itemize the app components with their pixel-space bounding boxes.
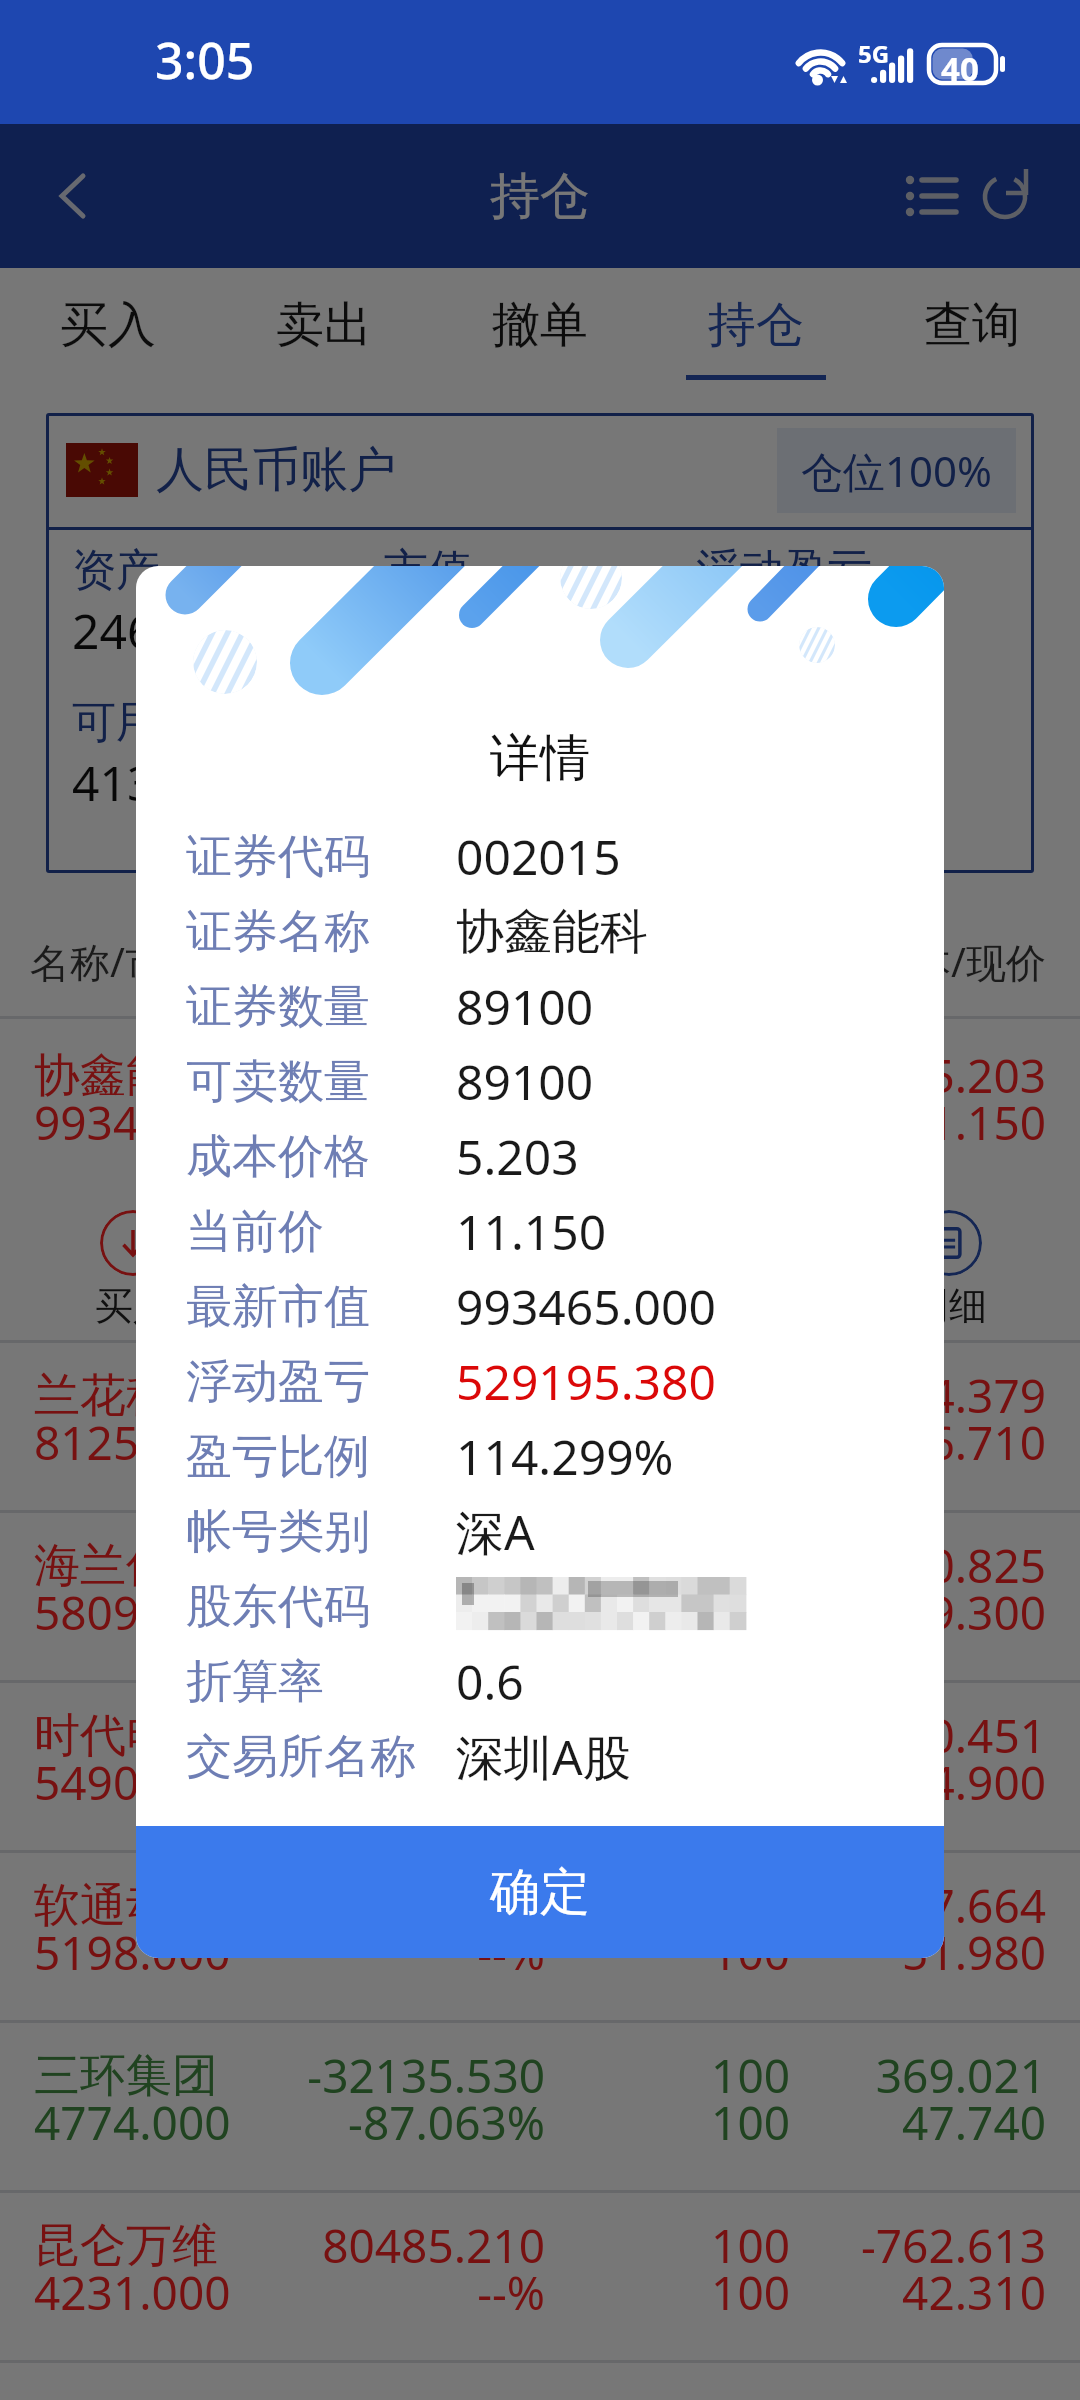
button[interactable]: 明细 (889, 1210, 1009, 1330)
staticText: 812582.000 (34, 1411, 294, 1474)
staticText: 40 (941, 46, 979, 91)
button[interactable]: Back (28, 151, 118, 241)
staticText: 持仓 (708, 295, 804, 355)
staticText (294, 1874, 545, 1937)
button[interactable]: 时代电 (0, 1683, 1080, 1850)
staticText: 盈亏 (291, 936, 543, 986)
staticText: 确定 (490, 1861, 590, 1924)
staticText: 4231.000 (34, 2261, 294, 2324)
staticText: 100 (545, 2261, 790, 2324)
staticText: 89100 (545, 1091, 790, 1154)
staticText: 59000 (545, 1364, 790, 1427)
staticText: 4.379 (790, 1364, 1046, 1427)
staticText: 资产 (72, 543, 160, 598)
button[interactable]: 买入 (73, 1210, 193, 1330)
staticText: 002015 (456, 824, 621, 889)
staticText: 62465 (545, 1581, 790, 1644)
staticText: 卖出 (367, 1282, 443, 1330)
staticText: 5G (858, 37, 890, 70)
staticText: 6.710 (790, 1411, 1046, 1474)
button[interactable]: 卖出 (216, 268, 432, 398)
staticText: --% (294, 2261, 545, 2324)
staticText: 89100 (456, 974, 594, 1039)
staticText: 369.021 (790, 2044, 1046, 2107)
button[interactable]: 三环集团 (0, 2023, 1080, 2190)
button[interactable]: 海兰信 (0, 1513, 1080, 1680)
staticText: 75.900% (294, 1411, 545, 1474)
button[interactable]: 行情 (617, 1210, 737, 1330)
staticText: 42.310 (790, 2261, 1046, 2324)
staticText: 62465 (545, 1534, 790, 1597)
button[interactable]: 查询 (864, 268, 1080, 398)
staticText: 协鑫能 (34, 1047, 294, 1105)
staticText: 详情 (490, 727, 590, 790)
staticText: 证券数量 (186, 978, 456, 1036)
staticText: 浮动盈亏 (186, 1353, 456, 1411)
staticText: 交易所名称 (186, 1728, 456, 1786)
staticText: 明细 (911, 1282, 987, 1330)
staticText: 580931.000 (34, 1581, 294, 1644)
staticText: 0.825 (790, 1534, 1046, 1597)
staticText: 股东代码 (186, 1578, 456, 1636)
staticText: --% (294, 1921, 545, 1984)
staticText: 5.203 (790, 1044, 1046, 1107)
staticText: 成本价格 (186, 1128, 456, 1186)
staticText: 5490.000 (34, 1751, 294, 1814)
staticText: 529195.380 (456, 1349, 716, 1414)
staticText: 软通动 (34, 1877, 294, 1935)
button[interactable]: Refresh (959, 150, 1051, 242)
staticText: 可卖数量 (186, 1053, 456, 1111)
staticText: 5198.000 (34, 1921, 294, 1984)
staticText: 仓位100% (801, 442, 992, 499)
staticText: 35420.100 (294, 1704, 545, 1767)
button[interactable]: 持仓 (648, 268, 864, 398)
button[interactable]: 协鑫能 (0, 1019, 1080, 1340)
staticText: -32135.530 (294, 2044, 545, 2107)
staticText: 卖出 (276, 295, 372, 355)
staticText: 昆仑万维 (34, 2217, 294, 2275)
staticText: 最新市值 (186, 1278, 456, 1336)
staticText: 100 (545, 1921, 790, 1984)
staticText: 买入 (95, 1282, 171, 1330)
staticText: 11.150 (790, 1091, 1046, 1154)
staticText: 5.203 (456, 1124, 579, 1189)
button[interactable]: 软通动 (0, 1853, 1080, 2020)
staticText: -87.063% (294, 2091, 545, 2154)
staticText: 人民币账户 (156, 440, 396, 500)
staticText: 可用 (72, 695, 160, 750)
button[interactable]: 昆仑万维 (0, 2193, 1080, 2360)
button[interactable]: 卖出 (345, 1210, 465, 1330)
staticText: 114.299% (294, 1091, 545, 1154)
button[interactable]: 买入 (0, 268, 216, 398)
staticText: 海兰信 (34, 1537, 294, 1595)
button[interactable]: 仓位100% (777, 428, 1016, 513)
staticText: 2468... (72, 598, 221, 663)
staticText: 深圳A股 (456, 1724, 631, 1790)
staticText: 撤单 (492, 295, 588, 355)
staticText: 深A (456, 1499, 535, 1565)
staticText: 三环集团 (34, 2047, 294, 2105)
button[interactable]: 兰花科 (0, 1343, 1080, 1510)
staticText: 100 (545, 1874, 790, 1937)
staticText: 数量/可用 (543, 934, 789, 989)
staticText: 折算率 (186, 1653, 456, 1711)
staticText: 12.300% (294, 1751, 545, 1814)
staticText: 413... (72, 750, 193, 815)
button[interactable]: List view (886, 150, 978, 242)
staticText: 114.299% (456, 1424, 674, 1489)
staticText: 993465.000 (456, 1274, 716, 1339)
staticText: 查询 (924, 295, 1020, 355)
staticText: 0.451 (790, 1704, 1046, 1767)
button[interactable]: 撤单 (432, 268, 648, 398)
staticText: 47.740 (790, 2091, 1046, 2154)
button[interactable]: 确定 (136, 1826, 944, 1958)
staticText: 100 (545, 2044, 790, 2107)
staticText: 4774.000 (34, 2091, 294, 2154)
staticText: 浮动盈亏 (696, 543, 872, 598)
staticText: 344530.200 (294, 1364, 545, 1427)
staticText: 名称/市值 (30, 934, 291, 989)
staticText: 帐号类别 (186, 1503, 456, 1561)
staticText: 100 (545, 2214, 790, 2277)
staticText: 529195.380 (294, 1044, 545, 1107)
staticText: 证券名称 (186, 903, 456, 961)
